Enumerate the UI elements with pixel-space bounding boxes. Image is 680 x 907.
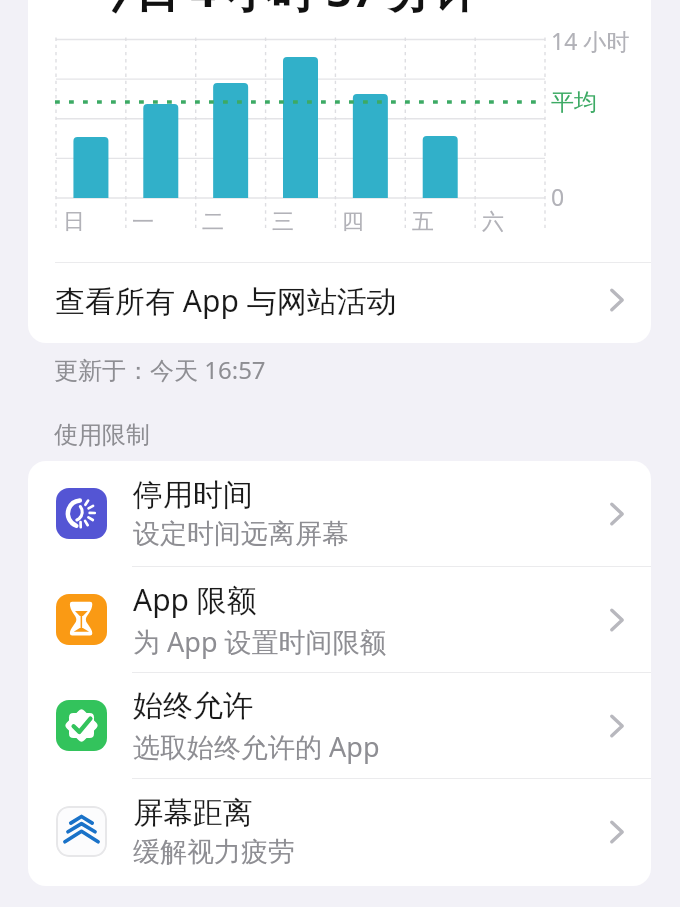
other: Open [610,608,624,632]
staticText: 今日 4 小时 37 分钟 [91,0,477,20]
staticText: 设定时间远离屏幕 [133,517,349,551]
staticText: 始终允许 [133,687,253,725]
staticText: 二 [202,208,224,236]
staticText: 14 小时 [551,25,630,56]
staticText: 五 [412,208,434,236]
button[interactable]: 始终允许 [28,673,651,778]
staticText: App 限额 [133,579,257,620]
staticText: 一 [132,208,154,236]
staticText: 查看所有 App 与网站活动 [55,280,397,321]
staticText: 更新于：今天 16:57 [54,353,266,386]
button[interactable]: 停用时间 [28,461,651,566]
staticText: 三 [272,208,294,236]
staticText: 屏幕距离 [133,794,253,832]
other: Open [610,502,624,526]
staticText: 六 [482,208,504,236]
other: Open [610,714,624,738]
button[interactable]: 查看所有 App 与网站活动 [28,260,651,340]
button[interactable]: App 限额 [28,567,651,672]
staticText: 平均 [551,88,597,117]
staticText: 日 [63,208,85,236]
staticText: 四 [342,208,364,236]
staticText: 缓解视力疲劳 [133,835,295,869]
button[interactable]: 屏幕距离 [28,779,651,884]
staticText: 选取始终允许的 App [133,728,380,765]
staticText: 停用时间 [133,476,253,514]
other: Open [610,288,624,312]
staticText: 0 [551,181,565,212]
staticText: 为 App 设置时间限额 [133,623,387,660]
other: Open [610,820,624,844]
staticText: 使用限制 [54,420,150,450]
